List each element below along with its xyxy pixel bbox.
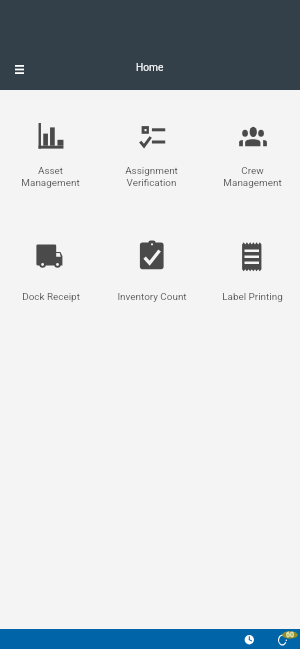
button[interactable]: Crew Management <box>202 90 300 208</box>
button[interactable]: Inventory Count <box>101 208 202 326</box>
button[interactable]: Assignment Verification <box>101 90 202 208</box>
button[interactable]: Open navigation menu <box>7 57 31 81</box>
staticText: 60 <box>286 631 294 639</box>
staticText: Home <box>136 62 164 74</box>
staticText: Assignment Verification <box>125 165 178 188</box>
staticText: Label Printing <box>222 291 283 303</box>
button[interactable]: Label Printing <box>202 208 300 326</box>
staticText: Dock Receipt <box>22 291 80 303</box>
button[interactable]: Sync pending records <box>274 629 300 649</box>
button[interactable]: Asset Management <box>0 90 101 208</box>
button[interactable]: Pending time entries <box>239 629 259 649</box>
staticText: Crew Management <box>223 165 282 188</box>
staticText: Asset Management <box>21 165 80 188</box>
staticText: Inventory Count <box>117 291 187 303</box>
button[interactable]: Dock Receipt <box>0 208 101 326</box>
